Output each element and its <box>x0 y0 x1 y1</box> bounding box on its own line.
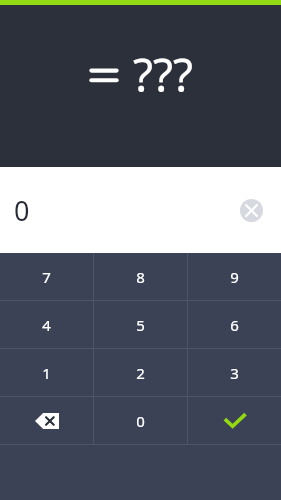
staticText: 4 <box>42 315 51 335</box>
button[interactable]: 8 <box>94 253 187 300</box>
staticText: 8 <box>136 267 145 287</box>
staticText: 0 <box>14 192 30 229</box>
button[interactable]: 5 <box>94 301 187 348</box>
button[interactable]: 2 <box>94 349 187 396</box>
staticText: ??? <box>133 43 193 106</box>
button[interactable]: 3 <box>188 349 281 396</box>
button[interactable]: 7 <box>0 253 93 300</box>
button[interactable]: 4 <box>0 301 93 348</box>
staticText: 9 <box>230 267 239 287</box>
staticText: 0 <box>136 411 145 431</box>
staticText: 6 <box>230 315 239 335</box>
button[interactable]: 1 <box>0 349 93 396</box>
staticText: 1 <box>42 363 51 383</box>
button[interactable]: Confirm <box>188 397 281 444</box>
button[interactable]: Clear input <box>240 199 263 222</box>
staticText: 5 <box>136 315 145 335</box>
button[interactable]: 9 <box>188 253 281 300</box>
staticText: 2 <box>136 363 145 383</box>
button[interactable]: 6 <box>188 301 281 348</box>
staticText: 7 <box>42 267 51 287</box>
staticText: 3 <box>230 363 239 383</box>
button[interactable]: Backspace <box>0 397 93 444</box>
button[interactable]: 0 <box>94 397 187 444</box>
